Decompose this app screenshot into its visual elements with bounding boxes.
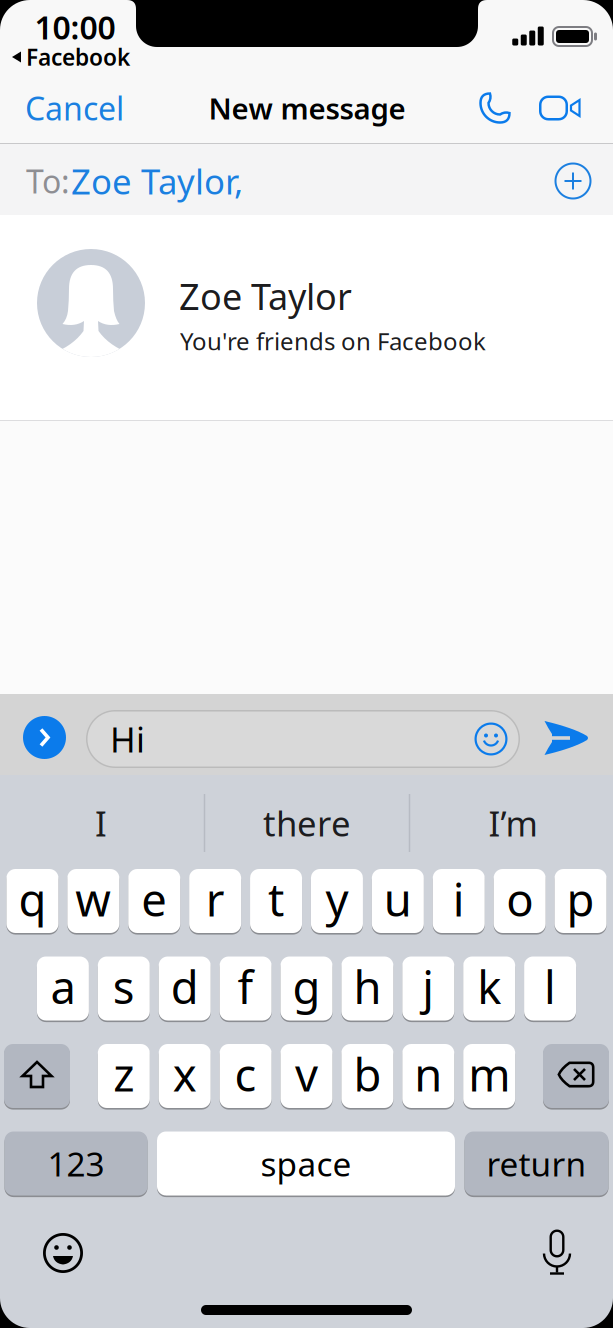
button[interactable]: x [159,1043,211,1109]
staticText: u [384,869,412,929]
staticText: Facebook [26,42,130,72]
button[interactable]: z [98,1043,150,1109]
staticText: h [353,956,381,1017]
staticText: i [453,869,465,929]
staticText: New message [208,88,405,127]
button[interactable]: n [402,1043,454,1109]
button[interactable]: g [280,955,332,1021]
button[interactable]: there [212,793,402,853]
staticText: y [325,869,348,929]
staticText: n [414,1044,442,1104]
staticText: c [235,1044,257,1104]
staticText: e [141,869,167,929]
button[interactable]: I’m [418,793,608,853]
staticText: Hi [110,716,145,762]
staticText: space [260,1141,351,1186]
staticText: j [422,956,434,1017]
staticText: 123 [47,1141,104,1186]
staticText: t [268,869,284,929]
button[interactable]: o [494,868,546,934]
staticText: return [486,1141,586,1186]
button[interactable]: q [6,868,58,934]
staticText: I [95,800,107,846]
staticText: g [292,956,320,1017]
button[interactable]: Video call [539,93,581,123]
staticText: f [238,956,254,1017]
button[interactable]: Emoji keyboard [43,1233,83,1273]
button[interactable]: d [159,955,211,1021]
button[interactable]: Add recipient [554,162,591,199]
staticText: p [566,869,594,929]
button[interactable]: j [402,955,454,1021]
staticText: I’m [488,800,537,846]
button[interactable]: f [220,955,272,1021]
button[interactable]: t [250,868,302,934]
button[interactable]: Delete [543,1043,609,1109]
staticText: a [50,956,75,1017]
button[interactable]: More actions [23,716,66,759]
staticText: there [263,800,351,846]
button[interactable]: a [37,955,89,1021]
button[interactable]: Send [544,719,588,757]
button[interactable]: space [157,1130,455,1196]
button[interactable]: m [463,1043,515,1109]
staticText: You're friends on Facebook [180,325,486,357]
button[interactable]: v [280,1043,332,1109]
button[interactable]: return [464,1130,608,1196]
staticText: z [113,1044,134,1104]
staticText: v [295,1044,318,1104]
button[interactable]: p [554,868,606,934]
staticText: k [477,956,501,1017]
staticText: Cancel [25,87,124,129]
button[interactable]: Dictate [542,1228,571,1275]
staticText: w [75,869,111,929]
button[interactable]: b [341,1043,393,1109]
button[interactable]: Emoji [474,722,507,755]
staticText: Zoe Taylor, [71,158,243,204]
button[interactable]: I [6,793,196,853]
staticText: o [506,869,533,929]
staticText: 10:00 [34,6,115,48]
staticText: x [173,1044,197,1104]
button[interactable]: Audio call [476,89,514,127]
button[interactable]: s [98,955,150,1021]
staticText: q [18,869,46,929]
staticText: To: [26,160,70,202]
button[interactable]: Zoe Taylor [0,215,613,419]
button[interactable]: Cancel [25,88,185,128]
button[interactable]: Numbers [4,1130,147,1196]
button[interactable]: r [189,868,241,934]
button[interactable]: u [372,868,424,934]
button[interactable]: y [311,868,363,934]
staticText: m [468,1044,510,1104]
button[interactable]: c [220,1043,272,1109]
button[interactable]: k [463,955,515,1021]
staticText: b [353,1044,381,1104]
staticText: d [171,956,199,1017]
button[interactable]: w [67,868,119,934]
staticText: s [113,956,135,1017]
button[interactable]: h [341,955,393,1021]
staticText: Zoe Taylor [179,272,352,320]
button[interactable]: l [524,955,576,1021]
staticText: l [544,956,556,1017]
button[interactable]: i [433,868,485,934]
button[interactable]: e [128,868,180,934]
button[interactable]: Shift [4,1043,70,1109]
staticText: r [206,869,225,929]
